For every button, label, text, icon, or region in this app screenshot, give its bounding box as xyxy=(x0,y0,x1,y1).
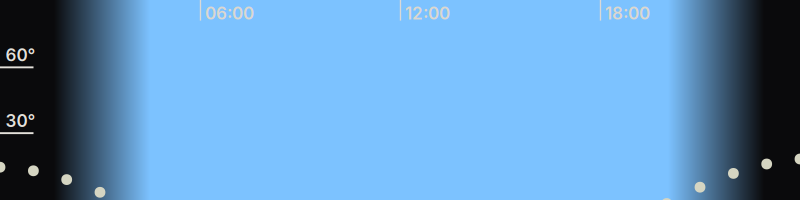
staticText: 06:00 xyxy=(205,3,254,24)
staticText: 12:00 xyxy=(405,3,450,24)
staticText: 18:00 xyxy=(605,3,650,24)
staticText: 60° xyxy=(5,45,35,65)
staticText: 30° xyxy=(5,110,35,131)
